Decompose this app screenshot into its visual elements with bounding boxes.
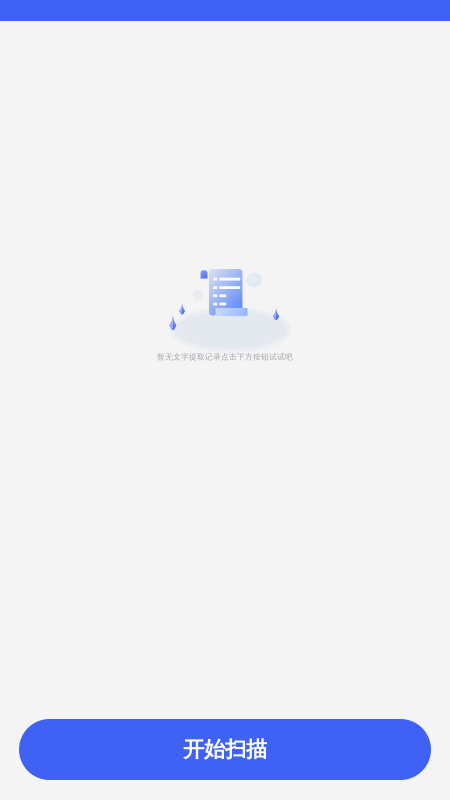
staticText: 开始扫描 xyxy=(183,736,267,763)
staticText: 暂无文字提取记录点击下方按钮试试吧 xyxy=(157,352,293,362)
button[interactable]: 开始扫描 xyxy=(19,719,431,780)
